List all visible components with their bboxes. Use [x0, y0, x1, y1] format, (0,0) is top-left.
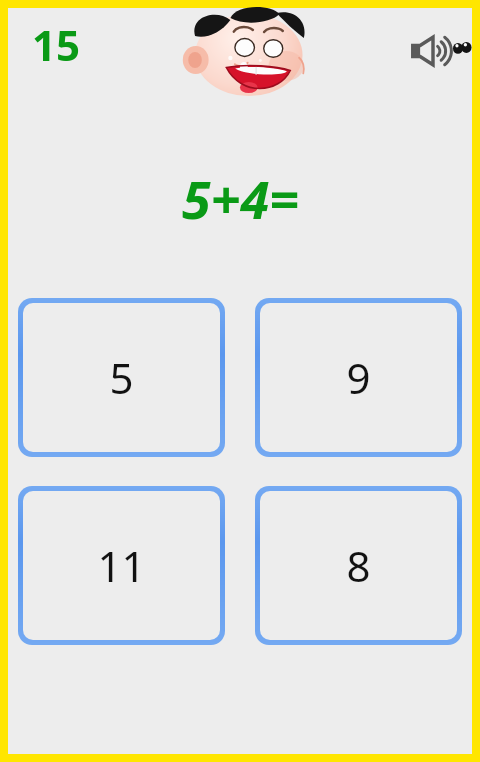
button[interactable]: 8 — [255, 486, 462, 645]
staticText: 11 — [97, 537, 146, 594]
button[interactable]: 9 — [255, 298, 462, 457]
button[interactable]: 5 — [18, 298, 225, 457]
button[interactable]: Sound on — [404, 22, 462, 80]
staticText: 5+4= — [182, 163, 299, 234]
staticText: 9 — [346, 349, 371, 406]
staticText: 8 — [346, 537, 371, 594]
staticText: 5 — [109, 349, 134, 406]
staticText: 15 — [32, 16, 81, 73]
button[interactable]: 11 — [18, 486, 225, 645]
